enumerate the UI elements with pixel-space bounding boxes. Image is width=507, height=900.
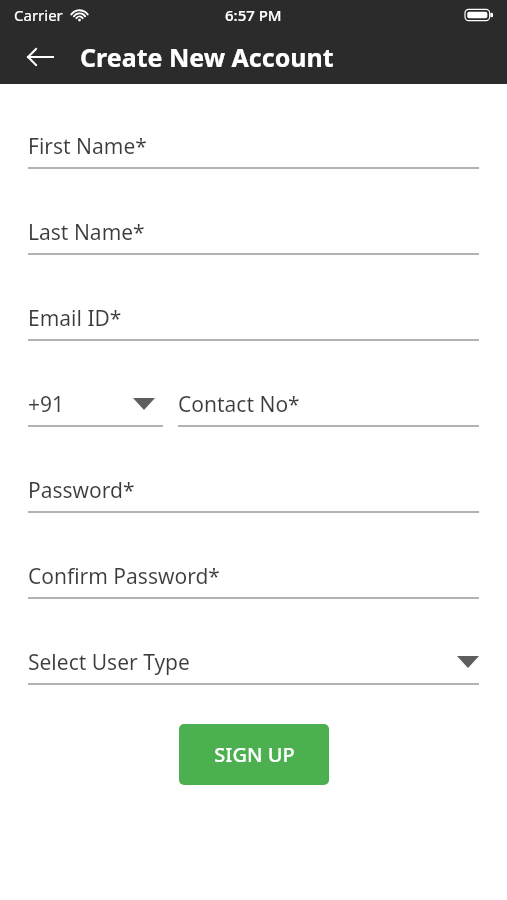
staticText: Contact No*	[178, 390, 300, 419]
button[interactable]: Last Name*	[28, 215, 479, 255]
staticText: Last Name*	[28, 218, 145, 247]
button[interactable]: Confirm Password*	[28, 559, 479, 599]
staticText: +91	[28, 390, 65, 419]
staticText: Select User Type	[28, 648, 190, 677]
staticText: Email ID*	[28, 304, 122, 333]
staticText: Carrier	[14, 5, 63, 25]
staticText: 6:57 PM	[225, 5, 282, 25]
button[interactable]: Contact No*	[178, 387, 479, 427]
button[interactable]: Back	[18, 35, 62, 79]
staticText: Confirm Password*	[28, 562, 220, 591]
button[interactable]: Select User Type	[28, 645, 479, 685]
staticText: First Name*	[28, 132, 147, 161]
button[interactable]: First Name*	[28, 129, 479, 169]
staticText: Create New Account	[80, 40, 334, 74]
button[interactable]: +91	[28, 387, 163, 427]
button[interactable]: Password*	[28, 473, 479, 513]
button[interactable]: Email ID*	[28, 301, 479, 341]
staticText: Password*	[28, 476, 135, 505]
button[interactable]: SIGN UP	[179, 724, 329, 785]
staticText: SIGN UP	[214, 741, 295, 768]
